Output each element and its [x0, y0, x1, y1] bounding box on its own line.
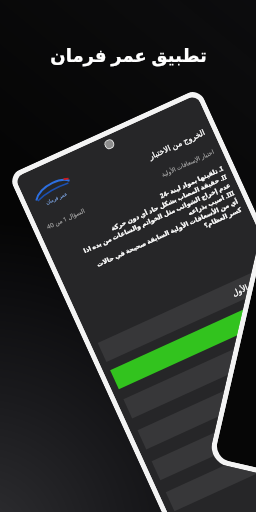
staticText: فقط الأول	[230, 274, 256, 298]
button[interactable]	[166, 415, 256, 511]
button[interactable]: لا شيء مما ذكر	[152, 384, 256, 480]
staticText: عمر فرمان	[45, 190, 68, 206]
staticText: تطبيق عمر فرمان	[50, 43, 207, 68]
button[interactable]: الخروج من الاختبار	[147, 123, 214, 161]
staticText: اختبار الإسعافات الأولية	[160, 148, 215, 179]
button[interactable]: جميع ما ذكر	[137, 353, 256, 449]
button[interactable]: فقط الأول	[98, 266, 256, 362]
staticText: السؤال 1 من 40	[46, 207, 86, 231]
staticText: الأول والثاني	[237, 301, 256, 328]
button[interactable]: الأول والثاني	[110, 293, 256, 389]
button[interactable]: الثاني والثالث	[123, 322, 256, 418]
staticText: 24- تلقيتها بمواد لينة .I حقيقة المصاب ب…	[51, 164, 243, 290]
